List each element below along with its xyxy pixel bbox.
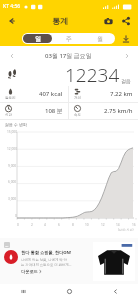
staticText: 거리 [74, 96, 81, 100]
button[interactable]: Back [4, 13, 20, 29]
button[interactable]: 속도 [69, 103, 138, 119]
staticText: 나에게 맞는 상품, 나에게 딱 맞 는 가격대의 쇼핑으로 더 편하게... [21, 257, 72, 267]
staticText: 8 [72, 223, 74, 227]
staticText: 0 [17, 223, 19, 227]
staticText: 6,000 [8, 180, 17, 184]
staticText: 2 [31, 223, 33, 227]
staticText: 4 [44, 223, 46, 227]
staticText: 칼로리 [5, 96, 16, 100]
staticText: 16 [132, 223, 136, 227]
staticText: 한다 통합 쇼핑몰, 한다ON! [21, 250, 72, 256]
staticText: 7.22 km [110, 90, 133, 98]
button[interactable]: Camera [100, 13, 116, 29]
staticText: 다운로드 [21, 269, 38, 274]
staticText: 일 [35, 35, 41, 43]
staticText: 2.75 km/h [104, 107, 133, 115]
staticText: 6 [58, 223, 60, 227]
staticText: AD [5, 244, 9, 247]
staticText: 10 [85, 223, 89, 227]
staticText: 걸음 수 변화 [5, 122, 28, 127]
staticText: (단위: 시간) [118, 228, 134, 232]
button[interactable]: Recents [0, 284, 46, 299]
button[interactable]: 월 [85, 34, 114, 43]
staticText: 407 kcal [39, 90, 63, 98]
staticText: 03월 17일 금요일 [45, 52, 92, 60]
staticText: 15,000 [7, 130, 17, 134]
staticText: 14 [116, 223, 120, 227]
staticText: 3,000 [8, 197, 17, 201]
button[interactable]: Share [118, 13, 134, 29]
button[interactable]: Back [92, 284, 138, 299]
button[interactable]: 거리 [69, 86, 138, 102]
button[interactable]: Next day [121, 50, 132, 61]
staticText: 12 [101, 223, 105, 227]
staticText: 주 [66, 35, 72, 43]
staticText: 12234 [65, 62, 120, 86]
staticText: KT 4:56 [3, 3, 21, 10]
button[interactable]: 시간 [0, 103, 68, 119]
staticText: 9,000 [8, 164, 17, 168]
staticText: 시간 [5, 113, 12, 117]
button[interactable]: Previous day [6, 50, 17, 61]
button[interactable]: 주 [54, 34, 83, 43]
staticText: 108 분 [45, 107, 63, 115]
staticText: 통계 [52, 16, 68, 26]
button[interactable]: Home [46, 284, 92, 299]
staticText: 월 [97, 35, 103, 43]
staticText: 0 [15, 214, 17, 218]
button[interactable]: 일 [23, 34, 52, 43]
staticText: 속도 [74, 113, 81, 117]
staticText: 12,000 [7, 147, 17, 151]
button[interactable]: Download [119, 32, 132, 45]
staticText: 걸음 [121, 78, 131, 84]
button[interactable]: 칼로리 [0, 86, 68, 102]
button[interactable]: 다운로드 [21, 269, 42, 274]
button[interactable]: AD [0, 238, 138, 284]
